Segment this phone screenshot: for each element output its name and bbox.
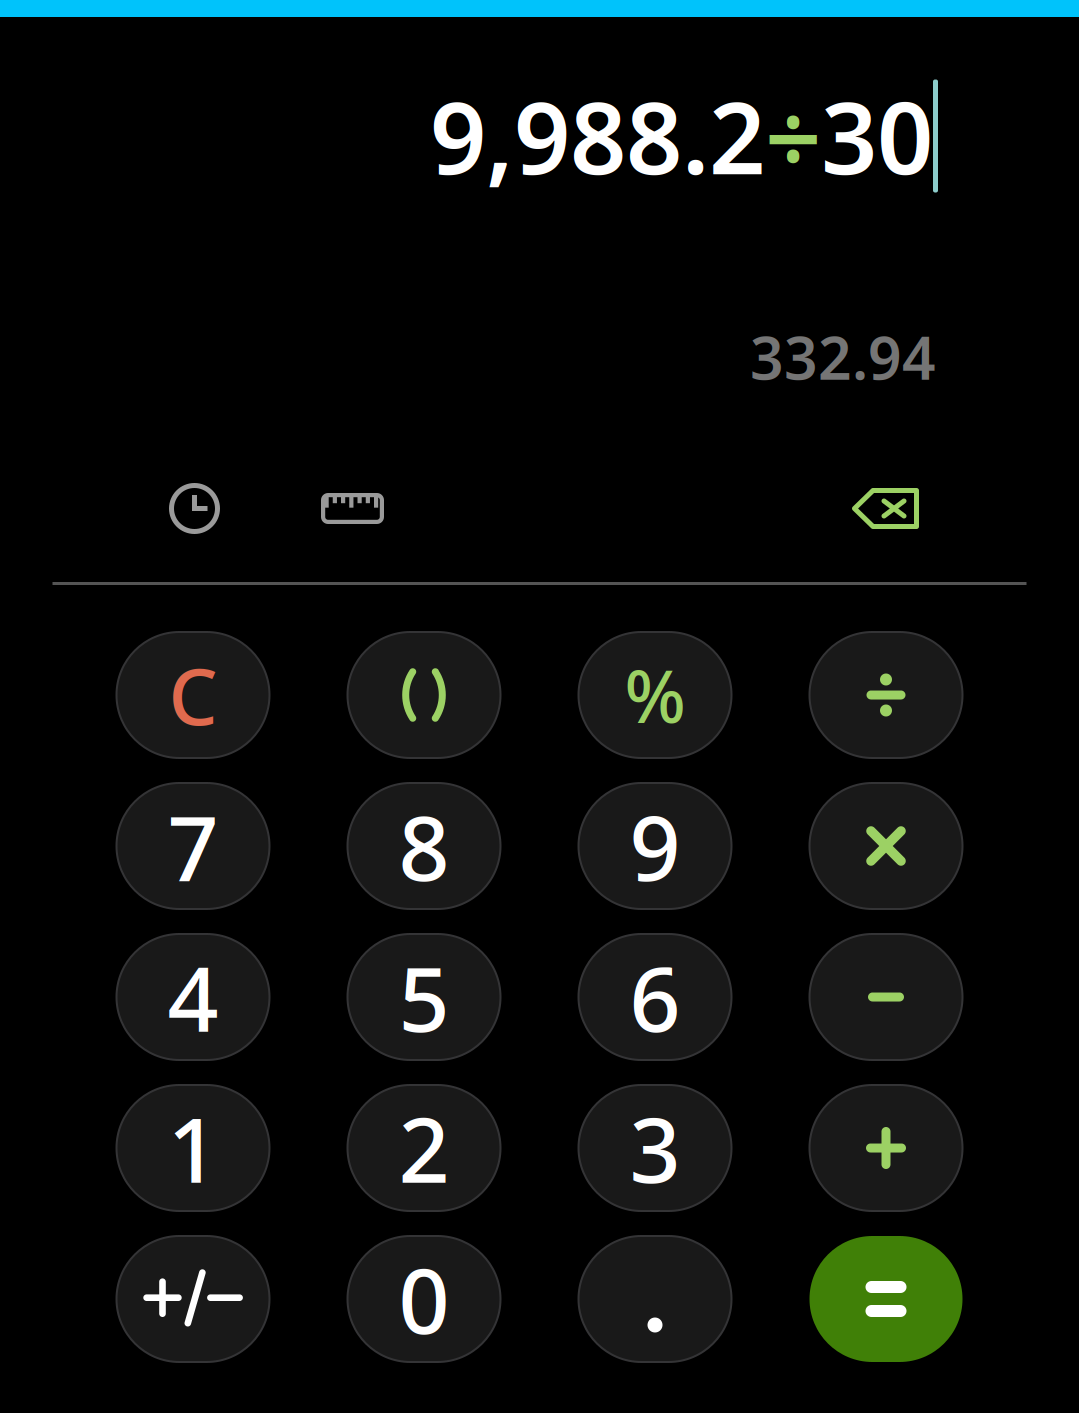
staticText: 7: [167, 787, 218, 905]
button[interactable]: Equals: [809, 1236, 962, 1362]
button[interactable]: Divide: [809, 632, 962, 758]
staticText: 332.94: [750, 318, 936, 396]
staticText: 1: [167, 1089, 218, 1207]
button[interactable]: 4: [116, 934, 269, 1060]
button[interactable]: 0: [347, 1236, 500, 1362]
button[interactable]: 1: [116, 1085, 269, 1211]
button[interactable]: 6: [578, 934, 731, 1060]
button[interactable]: C: [116, 632, 269, 758]
button[interactable]: 3: [578, 1085, 731, 1211]
button[interactable]: 2: [347, 1085, 500, 1211]
button[interactable]: Multiply: [809, 783, 962, 909]
button[interactable]: Decimal point: [578, 1236, 731, 1362]
button[interactable]: 9: [578, 783, 731, 909]
button[interactable]: Minus: [809, 934, 962, 1060]
staticText: 3: [629, 1089, 680, 1207]
button[interactable]: Plus: [809, 1085, 962, 1211]
staticText: 30: [821, 70, 933, 201]
button[interactable]: Plus or minus: [116, 1236, 269, 1362]
staticText: 9: [629, 787, 680, 905]
staticText: ÷: [765, 70, 821, 201]
button[interactable]: 7: [116, 783, 269, 909]
button[interactable]: Delete: [851, 487, 920, 530]
button[interactable]: Parentheses: [347, 632, 500, 758]
staticText: 5: [398, 938, 449, 1056]
button[interactable]: 5: [347, 934, 500, 1060]
staticText: %: [624, 647, 685, 743]
staticText: 4: [167, 938, 218, 1056]
button[interactable]: Unit converter: [321, 493, 384, 524]
staticText: 2: [398, 1089, 449, 1207]
button[interactable]: 8: [347, 783, 500, 909]
button[interactable]: %: [578, 632, 731, 758]
button[interactable]: History: [169, 483, 220, 534]
staticText: 8: [398, 787, 449, 905]
staticText: 9,988.2: [430, 70, 765, 201]
staticText: 0: [398, 1240, 449, 1358]
staticText: 6: [629, 938, 680, 1056]
staticText: C: [168, 644, 217, 746]
